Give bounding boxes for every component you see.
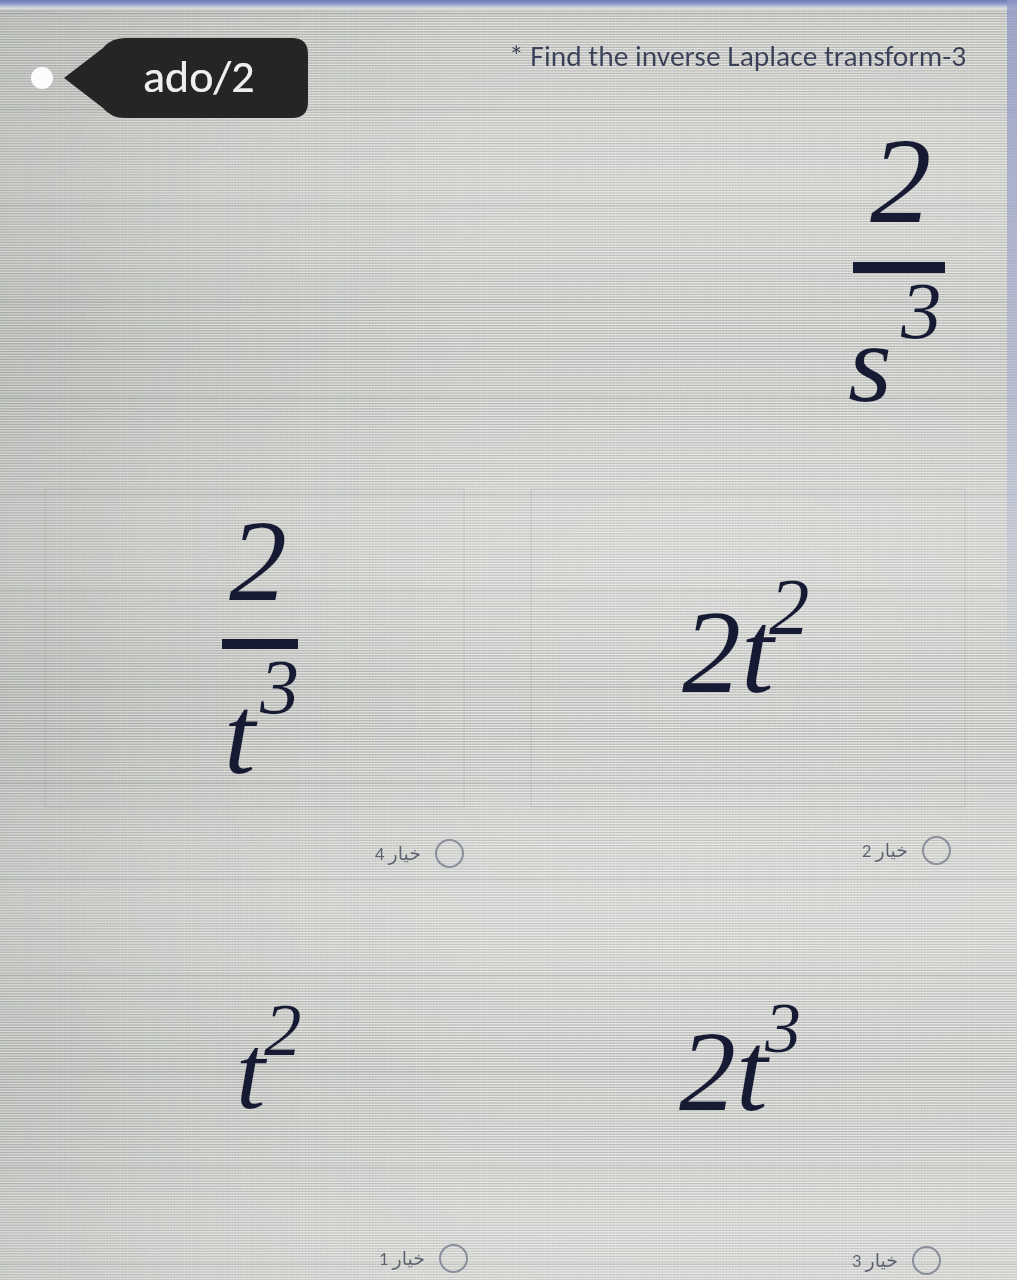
button[interactable]: Select option 4 — [311, 839, 464, 868]
staticText: خيار 3 — [788, 1249, 898, 1272]
button[interactable]: Option 2: two t squared — [531, 489, 965, 807]
staticText: 2 — [264, 988, 302, 1071]
button[interactable]: Select option 3 — [788, 1246, 941, 1275]
staticText: ado/2 — [143, 48, 255, 104]
staticText: 3 — [260, 643, 299, 729]
staticText: خيار 4 — [311, 842, 421, 865]
staticText: خيار 2 — [798, 839, 908, 862]
button[interactable]: Option 1: t squared — [40, 890, 464, 1230]
button[interactable]: Select option 2 — [798, 836, 951, 865]
staticText: خيار 1 — [315, 1247, 425, 1270]
staticText: 2 — [870, 112, 932, 248]
staticText: 2 — [769, 562, 810, 652]
staticText: 3 — [765, 988, 801, 1068]
staticText: 2t — [682, 587, 774, 718]
staticText: t — [224, 672, 256, 797]
button[interactable]: Option 3: two t cubed — [528, 890, 965, 1230]
staticText: t — [236, 1014, 266, 1130]
button[interactable]: Option 4: two over t cubed — [45, 489, 464, 807]
staticText: s — [848, 300, 892, 425]
staticText: * Find the inverse Laplace transform-3 — [509, 38, 979, 74]
button[interactable]: ado/2 — [63, 38, 308, 118]
staticText: 2t — [679, 1008, 768, 1134]
staticText: 2 — [229, 497, 287, 625]
button[interactable]: Select option 1 — [315, 1244, 468, 1273]
staticText: 3 — [901, 266, 942, 356]
